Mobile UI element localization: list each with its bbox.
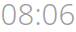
staticText: 08:06: [0, 0, 75, 32]
